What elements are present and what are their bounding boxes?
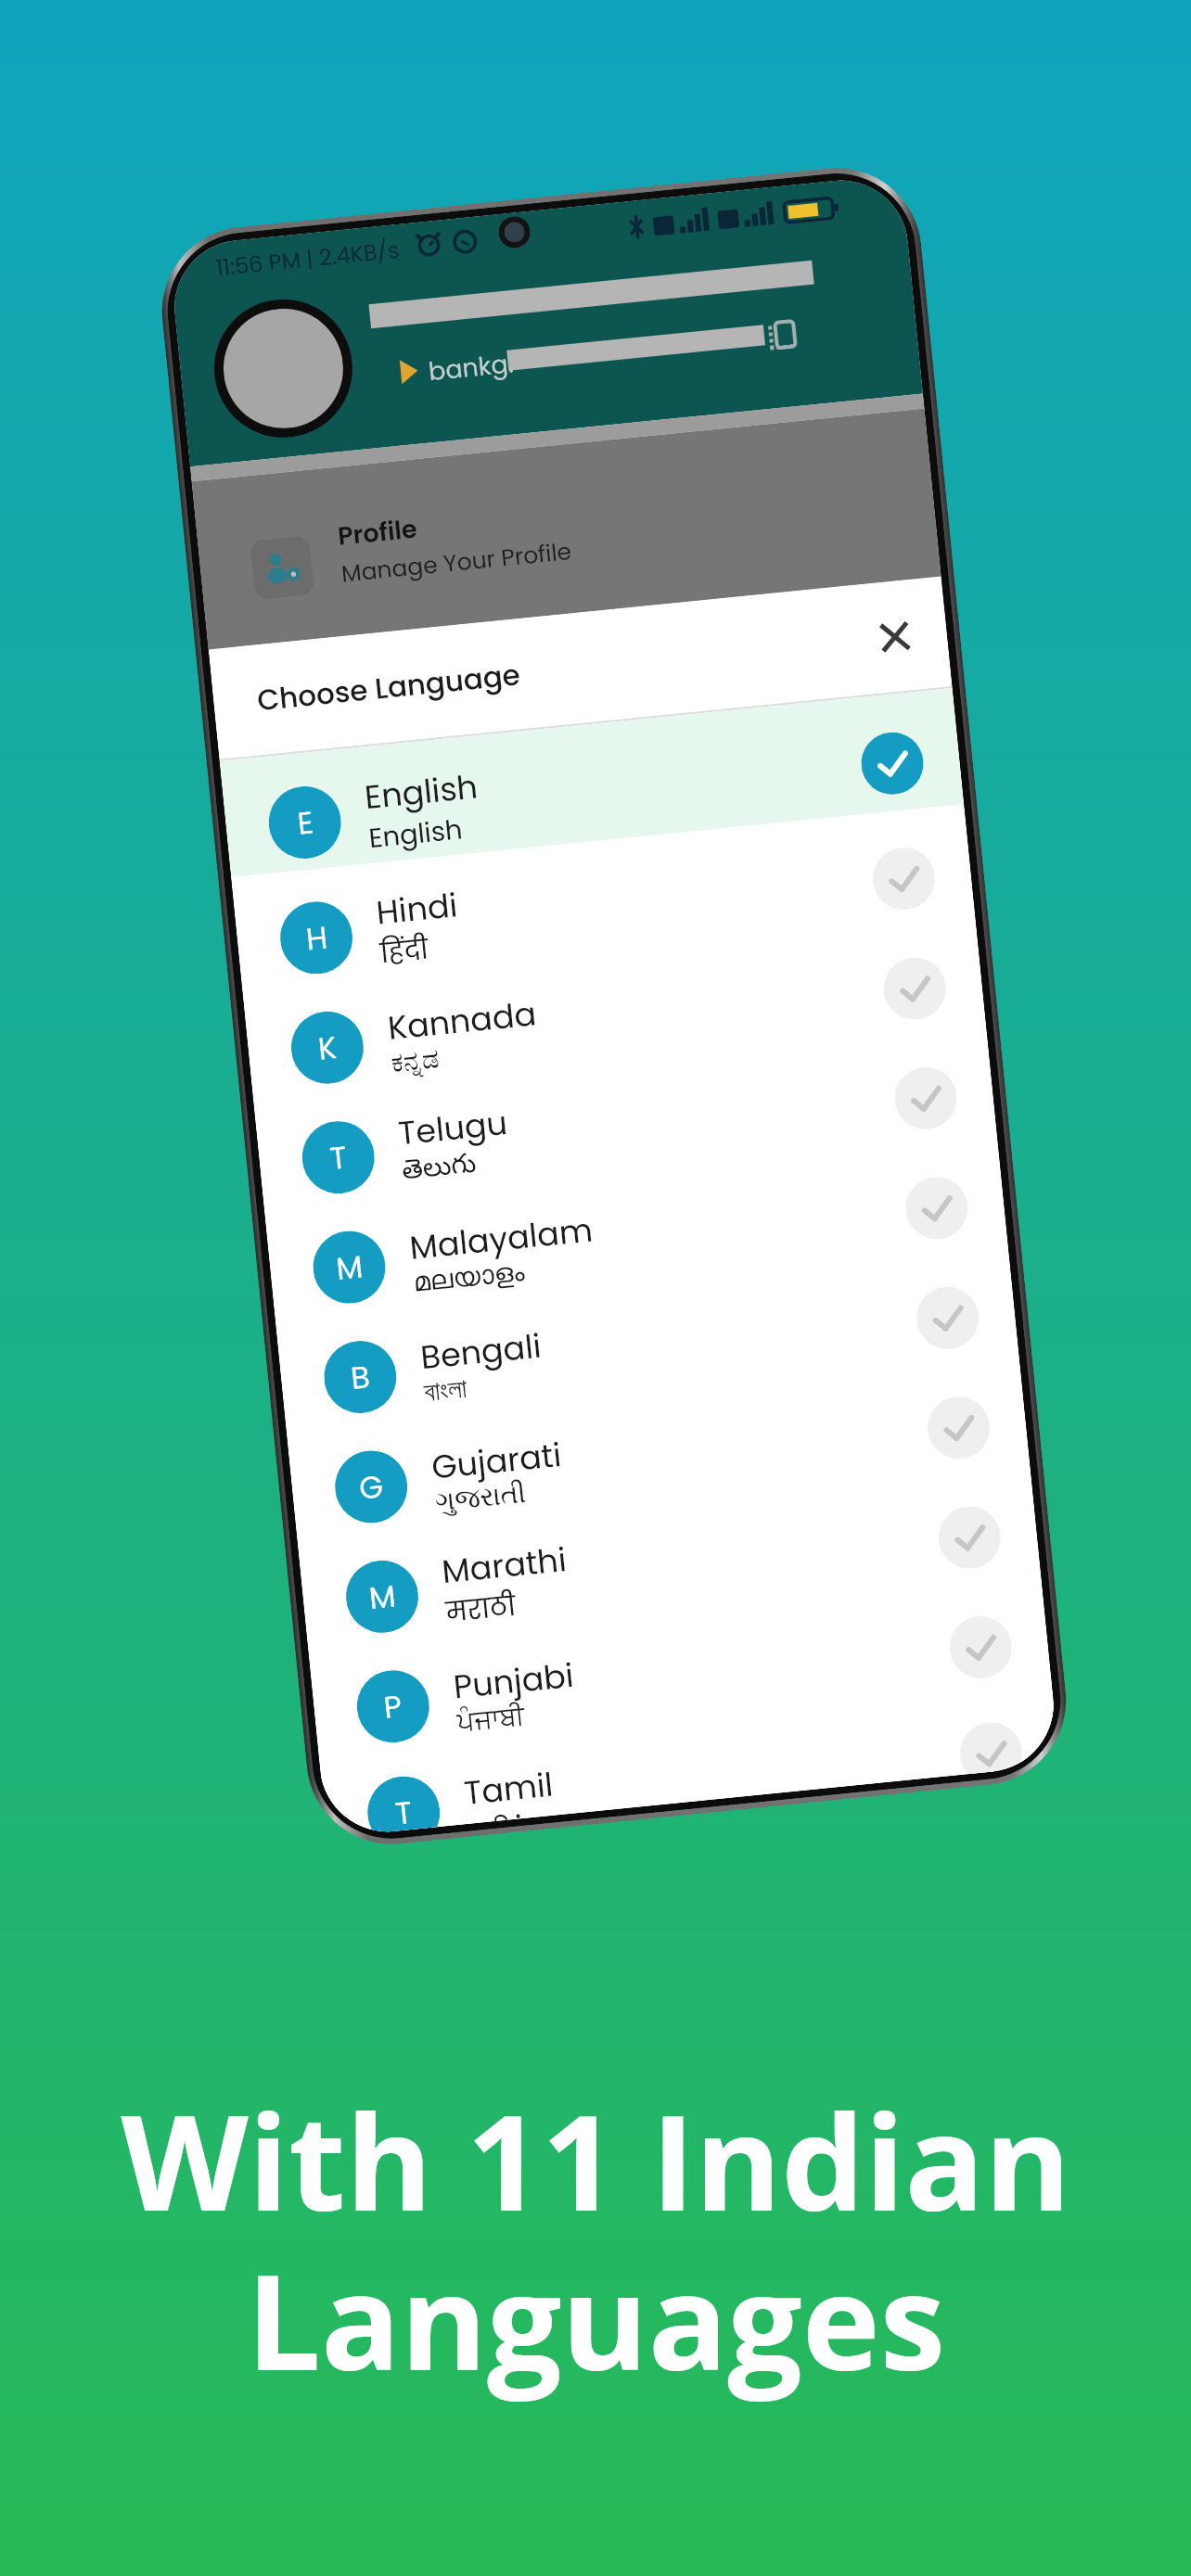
button[interactable]: M: [264, 1134, 1008, 1317]
staticText: ಕನ್ನಡ: [390, 1046, 441, 1077]
button[interactable]: M: [297, 1463, 1041, 1646]
staticText: T: [393, 1790, 414, 1831]
button[interactable]: E: [219, 688, 964, 877]
staticText: മലയാളം: [412, 1259, 526, 1297]
button[interactable]: T: [253, 1024, 997, 1207]
staticText: తెలుగు: [401, 1148, 479, 1192]
staticText: B: [349, 1355, 373, 1399]
staticText: With 11 Indian Languages: [121, 2070, 1071, 2409]
staticText: ਪੰਜਾਬੀ: [456, 1703, 526, 1736]
staticText: Gujarati: [429, 1432, 564, 1490]
staticText: Profile: [336, 511, 419, 554]
staticText: ગુજરાતી: [434, 1481, 528, 1517]
staticText: தமிழ்: [466, 1810, 528, 1824]
staticText: H: [304, 916, 330, 960]
staticText: Kannada: [386, 991, 539, 1051]
staticText: English: [367, 811, 465, 858]
staticText: Tamil: [462, 1762, 555, 1816]
staticText: K: [316, 1025, 339, 1070]
staticText: bankg.: [427, 346, 515, 390]
button[interactable]: K: [242, 914, 986, 1097]
staticText: English: [363, 764, 480, 820]
button[interactable]: G: [286, 1353, 1030, 1536]
staticText: 11:56 PM | 2.4KB/s: [214, 235, 401, 284]
staticText: Malayalam: [407, 1207, 595, 1270]
staticText: Hindi: [374, 882, 460, 935]
staticText: Choose Language: [255, 654, 522, 720]
staticText: Punjabi: [451, 1652, 576, 1710]
staticText: M: [367, 1574, 398, 1619]
button[interactable]: P: [308, 1573, 1052, 1756]
button[interactable]: T: [318, 1679, 1060, 1838]
staticText: Marathi: [440, 1537, 569, 1594]
staticText: বাংলা: [423, 1376, 469, 1407]
staticText: हिंदी: [379, 931, 430, 973]
button[interactable]: Close: [863, 604, 927, 669]
staticText: P: [382, 1684, 405, 1729]
staticText: G: [357, 1464, 385, 1509]
button[interactable]: H: [231, 804, 975, 987]
staticText: Bengali: [419, 1323, 544, 1380]
staticText: M: [334, 1245, 365, 1290]
staticText: E: [295, 800, 315, 844]
staticText: Manage Your Profile: [340, 535, 573, 590]
staticText: Telugu: [396, 1100, 510, 1156]
button[interactable]: B: [275, 1243, 1019, 1426]
staticText: मराठी: [444, 1587, 517, 1632]
staticText: T: [328, 1135, 349, 1180]
